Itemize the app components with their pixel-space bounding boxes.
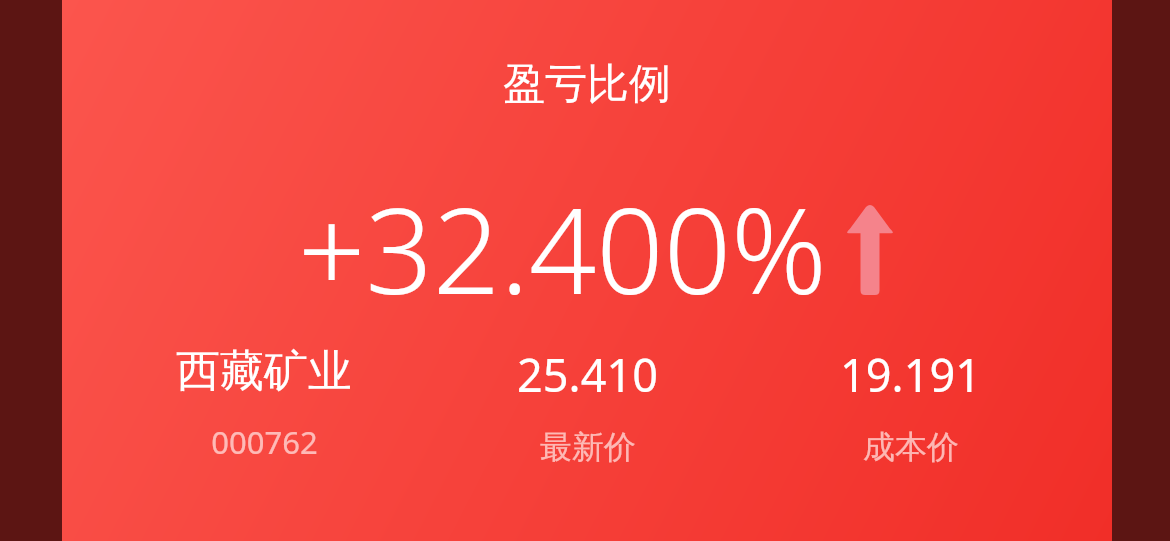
staticText: 25.410 — [517, 344, 658, 405]
button[interactable]: 西藏矿业 — [102, 344, 426, 463]
staticText: 000762 — [211, 421, 318, 463]
other: Gain, trending up — [845, 203, 895, 295]
staticText: 盈亏比例 — [503, 58, 671, 111]
staticText: 19.191 — [840, 344, 981, 405]
staticText: 成本价 — [863, 427, 959, 467]
button[interactable]: 19.191 — [749, 344, 1072, 467]
button[interactable]: 25.410 — [426, 344, 749, 467]
staticText: +32.400% — [298, 168, 827, 329]
staticText: 最新价 — [540, 427, 636, 467]
staticText: 西藏矿业 — [176, 344, 352, 399]
button[interactable]: 盈亏比例 — [62, 0, 1112, 541]
